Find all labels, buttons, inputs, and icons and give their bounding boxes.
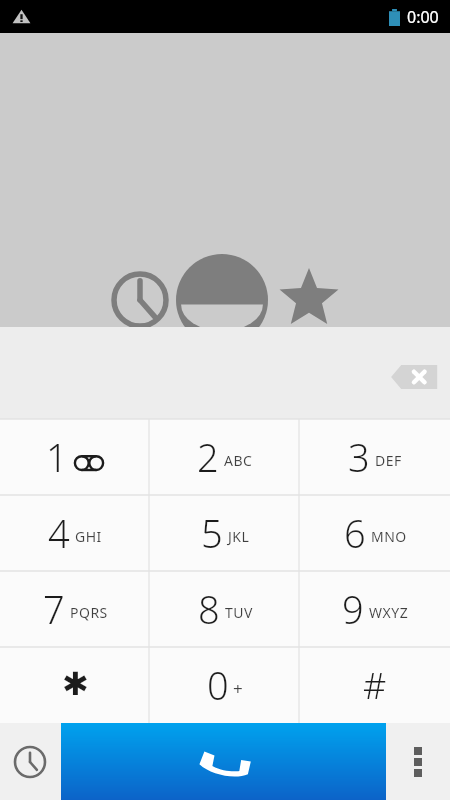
button[interactable]: Recents [103,247,177,327]
staticText: 1 [46,431,68,483]
staticText: 6 [344,507,366,559]
button[interactable]: 0 [150,647,300,723]
button[interactable]: Backspace [386,353,450,401]
staticText: 5 [201,507,223,559]
staticText: 3 [348,431,370,483]
staticText: GHI [75,527,102,546]
staticText: 7 [43,583,65,635]
staticText: DEF [375,451,402,470]
button[interactable]: 3 [300,419,450,495]
button[interactable]: ✱ [0,647,150,723]
button[interactable]: 8 [150,571,300,647]
staticText: 8 [198,583,220,635]
button[interactable]: 4 [0,495,150,571]
button[interactable]: 9 [300,571,450,647]
button[interactable]: Call history [0,723,60,800]
staticText: + [233,677,243,700]
staticText: ABC [224,451,253,470]
button[interactable]: Favorites [272,247,346,327]
button[interactable]: 1 [0,419,150,495]
button[interactable]: 2 [150,419,300,495]
button[interactable]: More options [386,723,450,800]
staticText: TUV [225,603,253,622]
button[interactable]: 7 [0,571,150,647]
staticText: # [363,661,387,710]
staticText: 0:00 [407,6,439,28]
staticText: JKL [228,527,250,546]
staticText: PQRS [70,603,108,622]
staticText: MNO [371,527,407,546]
button[interactable]: Call [61,723,386,800]
staticText: 2 [197,431,219,483]
button[interactable]: 5 [150,495,300,571]
staticText: ✱ [62,665,89,702]
staticText: 9 [342,583,364,635]
staticText: WXYZ [369,603,409,622]
staticText: 4 [48,507,70,559]
button[interactable]: # [300,647,450,723]
button[interactable]: 6 [300,495,450,571]
button[interactable]: Contacts [174,227,270,327]
staticText: 0 [207,659,229,711]
